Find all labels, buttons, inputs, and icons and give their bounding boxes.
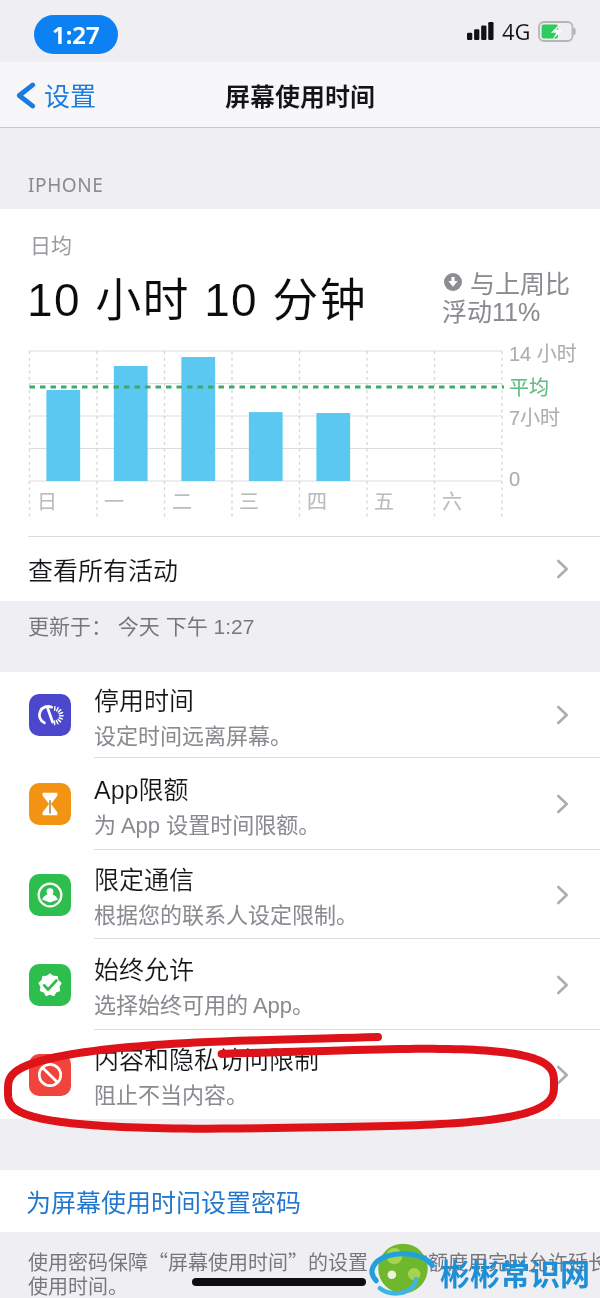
- staticText: 更新于： 今天 下午 1:27: [28, 610, 255, 640]
- staticText: 设定时间远离屏幕。: [94, 718, 293, 750]
- button[interactable]: 为屏幕使用时间设置密码: [0, 1170, 600, 1232]
- staticText: 根据您的联系人设定限制。: [94, 897, 359, 929]
- staticText: 平均: [509, 372, 549, 401]
- staticText: 阻止不当内容。: [94, 1077, 249, 1109]
- staticText: 六: [442, 486, 462, 515]
- staticText: 始终允许: [94, 950, 195, 986]
- staticText: 为屏幕使用时间设置密码: [26, 1183, 302, 1219]
- staticText: 停用时间: [94, 681, 195, 717]
- staticText: 日均: [30, 229, 72, 259]
- staticText: App限额: [94, 770, 189, 806]
- button[interactable]: 限定通信: [0, 850, 600, 939]
- staticText: 14 小时: [509, 338, 577, 367]
- staticText: 五: [374, 486, 394, 515]
- staticText: 查看所有活动: [28, 551, 179, 587]
- staticText: 三: [239, 486, 259, 515]
- staticText: 7小时: [509, 402, 561, 431]
- staticText: 四: [307, 486, 327, 515]
- button[interactable]: 停用时间: [0, 672, 600, 758]
- staticText: 0: [509, 468, 521, 490]
- staticText: 与上周比: [470, 264, 571, 300]
- button[interactable]: 内容和隐私访问限制: [0, 1030, 600, 1119]
- button[interactable]: App限额: [0, 758, 600, 850]
- staticText: 一: [104, 486, 124, 515]
- button[interactable]: 始终允许: [0, 939, 600, 1030]
- staticText: 日: [37, 486, 57, 515]
- staticText: 浮动11%: [442, 292, 541, 328]
- staticText: 为 App 设置时间限额。: [94, 807, 321, 839]
- staticText: 选择始终可用的 App。: [94, 987, 315, 1019]
- staticText: 内容和隐私访问限制: [94, 1040, 320, 1076]
- staticText: 4G: [502, 16, 531, 46]
- staticText: 彬彬常识网: [440, 1250, 590, 1293]
- staticText: 使用密码保障“屏幕使用时间”的设置，并在额度用完时允许延长 使用时间。: [28, 1247, 600, 1298]
- staticText: 设置: [44, 76, 97, 114]
- staticText: 1:27: [52, 18, 100, 51]
- button[interactable]: 查看所有活动: [0, 536, 600, 601]
- button[interactable]: 设置: [0, 62, 150, 128]
- staticText: 屏幕使用时间: [225, 77, 376, 113]
- staticText: 限定通信: [94, 860, 195, 896]
- staticText: 二: [172, 486, 192, 515]
- staticText: 10 小时 10 分钟: [27, 263, 368, 330]
- staticText: IPHONE: [28, 172, 104, 198]
